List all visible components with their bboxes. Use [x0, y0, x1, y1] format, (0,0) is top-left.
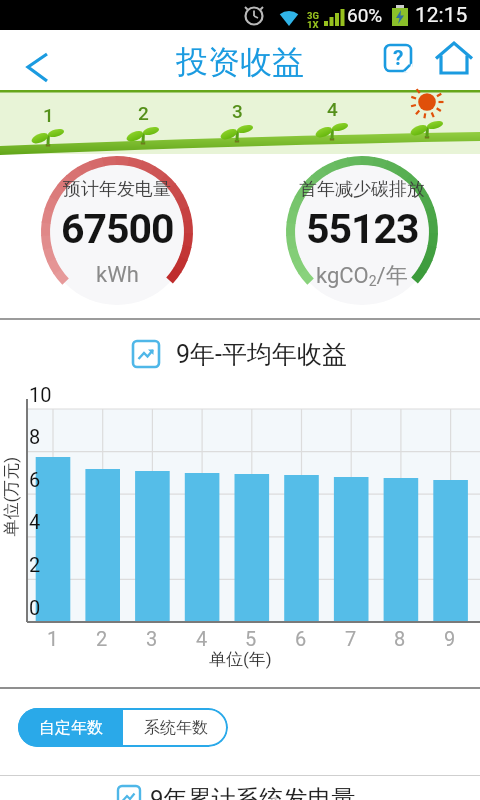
staticText: 4: [327, 98, 338, 120]
staticText: 5: [245, 627, 257, 649]
staticText: 0: [29, 596, 41, 619]
staticText: 2: [96, 627, 108, 649]
staticText: 1: [43, 104, 54, 126]
staticText: 自定年数: [39, 718, 103, 738]
staticText: 投资收益: [176, 42, 304, 82]
staticText: 系统年数: [144, 718, 208, 738]
staticText: 单位(万元): [0, 456, 21, 536]
staticText: 60%: [347, 4, 383, 26]
staticText: 7: [345, 627, 357, 649]
staticText: 4: [196, 627, 208, 649]
staticText: 67500: [61, 205, 174, 245]
staticText: 9: [444, 627, 456, 649]
staticText: 3: [232, 100, 243, 122]
staticText: 10: [29, 383, 52, 406]
staticText: 12:15: [415, 3, 468, 27]
staticText: 1: [47, 627, 59, 649]
staticText: 2: [138, 102, 149, 124]
staticText: 55123: [306, 205, 419, 245]
staticText: 8: [394, 627, 406, 649]
button[interactable]: 自定年数: [18, 708, 123, 747]
staticText: 3G: [307, 10, 319, 21]
staticText: kgCO2/年: [316, 262, 408, 288]
button[interactable]: 系统年数: [123, 708, 228, 747]
staticText: 6: [29, 468, 41, 491]
staticText: 8: [29, 425, 41, 448]
button[interactable]: [10, 35, 60, 85]
staticText: 预计年发电量: [63, 178, 171, 200]
staticText: 3: [146, 627, 158, 649]
staticText: ?: [393, 46, 404, 71]
button[interactable]: ?: [380, 41, 416, 77]
staticText: 首年减少碳排放: [299, 178, 425, 200]
staticText: 单位(年): [209, 649, 272, 670]
staticText: 4: [29, 510, 41, 533]
staticText: 2: [29, 553, 41, 576]
staticText: 1X: [307, 19, 319, 30]
staticText: 9年累计系统发电量: [150, 784, 356, 800]
staticText: 6: [295, 627, 307, 649]
button[interactable]: [432, 39, 476, 81]
staticText: 9年-平均年收益: [176, 339, 347, 370]
staticText: kWh: [96, 262, 139, 288]
